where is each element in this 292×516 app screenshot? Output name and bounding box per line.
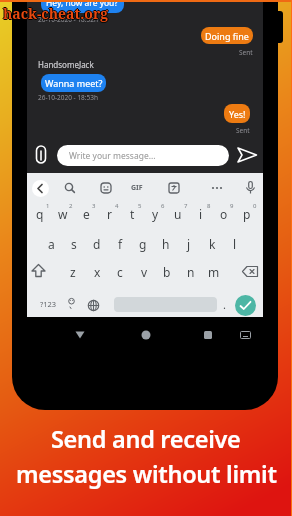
staticText: n (187, 264, 195, 280)
staticText: Sent (239, 48, 253, 57)
staticText: hack-cheat.org (3, 5, 109, 24)
button[interactable] (235, 295, 256, 316)
staticText: v (141, 264, 148, 280)
staticText: u (174, 206, 182, 222)
button[interactable]: u (167, 205, 189, 222)
button[interactable]: v (133, 263, 155, 280)
button[interactable] (67, 298, 76, 310)
staticText: Yes! (229, 108, 246, 120)
staticText: hack-cheat.org (2, 4, 108, 23)
button[interactable]: h (155, 235, 177, 252)
button[interactable]: o (213, 205, 235, 222)
button[interactable] (245, 181, 256, 195)
button[interactable] (100, 182, 112, 194)
staticText: 4 (115, 202, 119, 210)
staticText: 9 (230, 202, 234, 210)
button[interactable]: y (144, 205, 166, 222)
button[interactable] (211, 186, 223, 190)
button[interactable]: t (121, 205, 143, 222)
staticText: Write your message... (69, 150, 156, 162)
staticText: HandsomeJack (38, 59, 94, 70)
button[interactable]: g (132, 235, 154, 252)
button[interactable]: e (75, 205, 97, 222)
staticText: d (93, 236, 101, 252)
button[interactable]: p (236, 205, 258, 222)
button[interactable] (75, 331, 85, 339)
button[interactable]: b (156, 263, 178, 280)
staticText: g (139, 236, 147, 252)
button[interactable]: i (190, 205, 212, 222)
button[interactable]: ?123 (33, 297, 63, 311)
button[interactable] (237, 147, 258, 163)
button[interactable]: r (98, 205, 120, 222)
staticText: c (117, 264, 123, 280)
staticText: 3 (92, 202, 96, 210)
button[interactable]: x (86, 263, 108, 280)
button[interactable]: q (29, 205, 51, 222)
staticText: hack-cheat.org (4, 4, 110, 23)
staticText: y (152, 206, 159, 222)
staticText: w (58, 206, 68, 222)
staticText: t (130, 206, 135, 222)
staticText: Send and receive (51, 423, 241, 455)
staticText: m (208, 264, 220, 280)
button[interactable] (240, 331, 251, 339)
button[interactable] (168, 182, 180, 194)
staticText: i (199, 206, 203, 222)
staticText: a (48, 236, 55, 252)
button[interactable]: Yes! (224, 104, 250, 123)
staticText: 26-10-2020 - 18:53h (38, 93, 99, 102)
button[interactable]: c (109, 263, 131, 280)
button[interactable]: j (178, 235, 200, 252)
staticText: o (220, 206, 228, 222)
staticText: 26-10-2020 - 18:52h (38, 15, 99, 24)
staticText: r (107, 206, 112, 222)
button[interactable]: Wanna meet? (41, 74, 106, 92)
staticText: z (70, 264, 76, 280)
staticText: Wanna meet? (45, 77, 103, 89)
staticText: s (71, 236, 77, 252)
button[interactable]: z (62, 263, 84, 280)
staticText: hack-cheat.org (3, 4, 109, 23)
staticText: 0 (253, 202, 257, 210)
button[interactable] (32, 180, 49, 197)
button[interactable] (141, 330, 151, 340)
staticText: Hey, how are you? (46, 0, 119, 9)
staticText: f (118, 236, 123, 252)
staticText: GIF (131, 183, 143, 193)
staticText: hack-cheat.org (3, 3, 109, 22)
button[interactable]: GIF (126, 182, 148, 194)
button[interactable]: Write your message... (57, 145, 229, 166)
button[interactable] (204, 331, 212, 339)
button[interactable] (64, 182, 76, 194)
button[interactable]: n (180, 263, 202, 280)
staticText: p (243, 206, 251, 222)
staticText: q (36, 206, 44, 222)
button[interactable]: s (63, 235, 85, 252)
staticText: x (94, 264, 101, 280)
staticText: 8 (207, 202, 211, 210)
button[interactable]: Hey, how are you? (41, 0, 124, 13)
button[interactable]: m (203, 263, 225, 280)
staticText: . (223, 297, 226, 311)
staticText: 2 (69, 202, 73, 210)
button[interactable] (87, 299, 100, 312)
staticText: k (209, 236, 216, 252)
button[interactable]: d (86, 235, 108, 252)
button[interactable]: l (224, 235, 246, 252)
staticText: b (163, 264, 171, 280)
button[interactable]: . (218, 297, 230, 311)
button[interactable]: f (109, 235, 131, 252)
button[interactable] (31, 264, 46, 278)
staticText: Doing fine (205, 30, 249, 42)
button[interactable]: Doing fine (201, 27, 253, 44)
button[interactable]: a (40, 235, 62, 252)
button[interactable]: w (52, 205, 74, 222)
staticText: l (233, 236, 237, 252)
button[interactable] (242, 266, 259, 277)
staticText: e (83, 206, 90, 222)
staticText: h (162, 236, 170, 252)
button[interactable]: k (201, 235, 223, 252)
staticText: 5 (138, 202, 142, 210)
